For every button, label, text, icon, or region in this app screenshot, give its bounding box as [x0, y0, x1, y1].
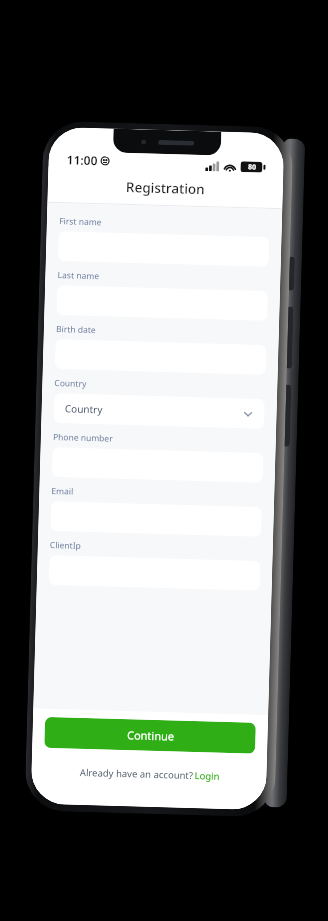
staticText: Already have an account? [78, 766, 195, 782]
button[interactable]: Phone number [40, 425, 276, 485]
button[interactable]: Already have an account? [31, 765, 267, 784]
staticText: Login [194, 769, 220, 783]
button[interactable]: Birth date [43, 317, 279, 377]
staticText: Last name [57, 269, 99, 282]
staticText: 11:00 [66, 151, 98, 168]
staticText: Continue [126, 727, 175, 743]
button[interactable]: ClientIp [37, 533, 273, 593]
button[interactable]: Continue [44, 717, 256, 754]
staticText: Birth date [56, 323, 96, 336]
button[interactable]: Last name [44, 263, 281, 323]
staticText: Country [64, 401, 103, 416]
button[interactable]: First name [46, 209, 282, 269]
staticText: ClientIp [50, 539, 81, 552]
button[interactable]: Country [41, 371, 278, 431]
other: Open country list [242, 408, 254, 420]
staticText: Email [51, 485, 73, 498]
button[interactable]: Email [38, 479, 275, 539]
staticText: Registration [126, 178, 205, 198]
staticText: Phone number [53, 431, 113, 445]
staticText: Country [54, 377, 86, 390]
staticText: 80 [247, 162, 257, 173]
staticText: First name [59, 215, 102, 228]
